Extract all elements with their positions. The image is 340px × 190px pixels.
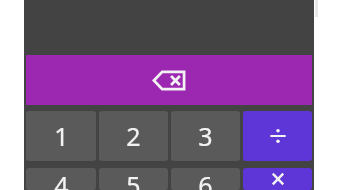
staticText: 1 [54, 119, 69, 153]
staticText: 3 [198, 119, 213, 153]
button[interactable]: Divide [243, 111, 312, 161]
staticText: 6 [198, 168, 213, 190]
button[interactable]: 5 [99, 168, 168, 190]
button[interactable]: 2 [99, 111, 168, 161]
button[interactable]: 1 [26, 111, 96, 161]
button[interactable]: 4 [26, 168, 96, 190]
staticText: 2 [126, 119, 141, 153]
staticText: 5 [126, 168, 141, 190]
button[interactable]: Multiply [243, 168, 312, 190]
staticText: 4 [54, 168, 69, 190]
button[interactable]: 3 [171, 111, 240, 161]
button[interactable]: Backspace [26, 55, 312, 105]
button[interactable]: 6 [171, 168, 240, 190]
